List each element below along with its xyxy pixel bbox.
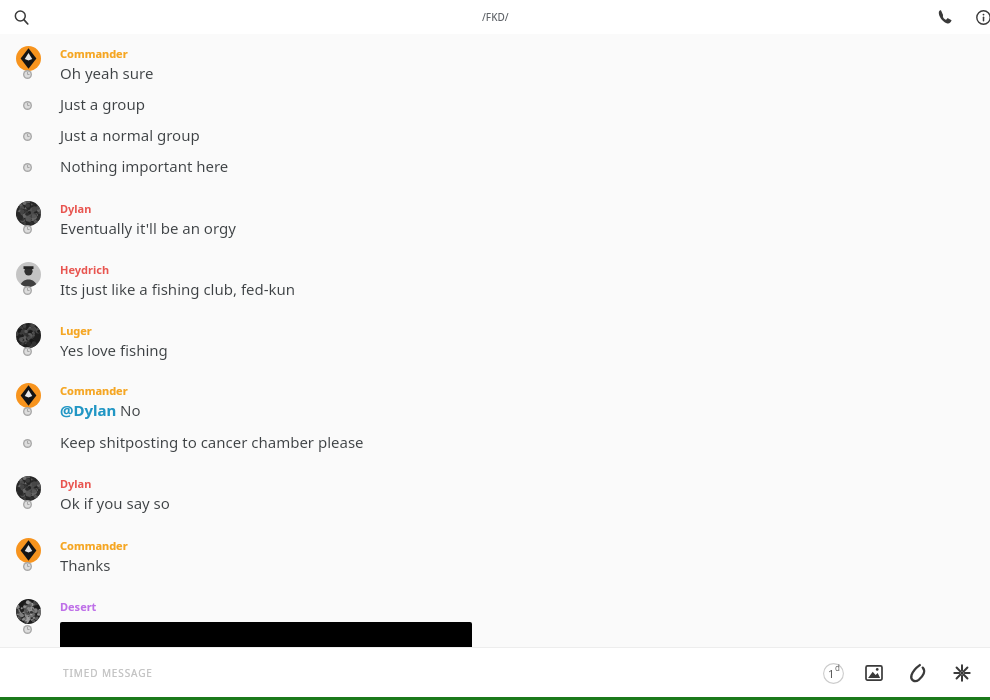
staticText: @Dylan No [60, 400, 141, 420]
button[interactable]: Send photo [852, 651, 896, 695]
button[interactable]: Thanks [60, 555, 111, 575]
button[interactable]: Yes love fishing [60, 340, 168, 360]
button[interactable]: Luger [60, 323, 92, 338]
staticText: Just a normal group [60, 125, 200, 145]
staticText: Desert [60, 599, 97, 614]
staticText: Yes love fishing [60, 340, 168, 360]
staticText: d [835, 662, 840, 673]
staticText: Commander [60, 383, 128, 398]
button[interactable]: Commander [60, 46, 128, 61]
button[interactable]: Heydrich [60, 262, 110, 277]
button[interactable] [60, 622, 472, 666]
button[interactable]: @Dylan No [60, 400, 141, 420]
button[interactable]: Info [968, 2, 990, 32]
staticText: /FKD/ [482, 10, 509, 24]
button[interactable]: Its just like a fishing club, fed-kun [60, 279, 296, 299]
button[interactable]: Oh yeah sure [60, 63, 154, 83]
staticText: Dylan [60, 476, 92, 491]
staticText: Eventually it'll be an orgy [60, 218, 236, 238]
button[interactable]: Attach file [896, 651, 940, 695]
staticText: Oh yeah sure [60, 63, 154, 83]
staticText: Nothing important here [60, 156, 229, 176]
button[interactable]: Eventually it'll be an orgy [60, 218, 236, 238]
staticText: Just a group [60, 94, 145, 114]
staticText: Thanks [60, 555, 111, 575]
button[interactable]: Call [930, 2, 960, 32]
staticText: Commander [60, 46, 128, 61]
button[interactable]: Ok if you say so [60, 493, 170, 513]
button[interactable]: Message timer 1 day [814, 654, 852, 692]
button[interactable]: Dylan [60, 201, 92, 216]
staticText: Commander [60, 538, 128, 553]
button[interactable]: Nothing important here [60, 156, 229, 176]
button[interactable]: Effects [940, 651, 984, 695]
button[interactable]: Commander [60, 383, 128, 398]
staticText: 1 [828, 666, 835, 681]
button[interactable]: Commander [60, 538, 128, 553]
button[interactable]: Desert [60, 599, 97, 614]
button[interactable]: Dylan [60, 476, 92, 491]
button[interactable]: Just a normal group [60, 125, 200, 145]
staticText: TIMED MESSAGE [63, 666, 153, 680]
staticText: Luger [60, 323, 92, 338]
button[interactable]: Keep shitposting to cancer chamber pleas… [60, 432, 364, 452]
staticText: Heydrich [60, 262, 110, 277]
button[interactable]: Search [7, 3, 35, 31]
staticText: Ok if you say so [60, 493, 170, 513]
staticText: Keep shitposting to cancer chamber pleas… [60, 432, 364, 452]
staticText: Dylan [60, 201, 92, 216]
button[interactable]: Just a group [60, 94, 145, 114]
staticText: Its just like a fishing club, fed-kun [60, 279, 296, 299]
